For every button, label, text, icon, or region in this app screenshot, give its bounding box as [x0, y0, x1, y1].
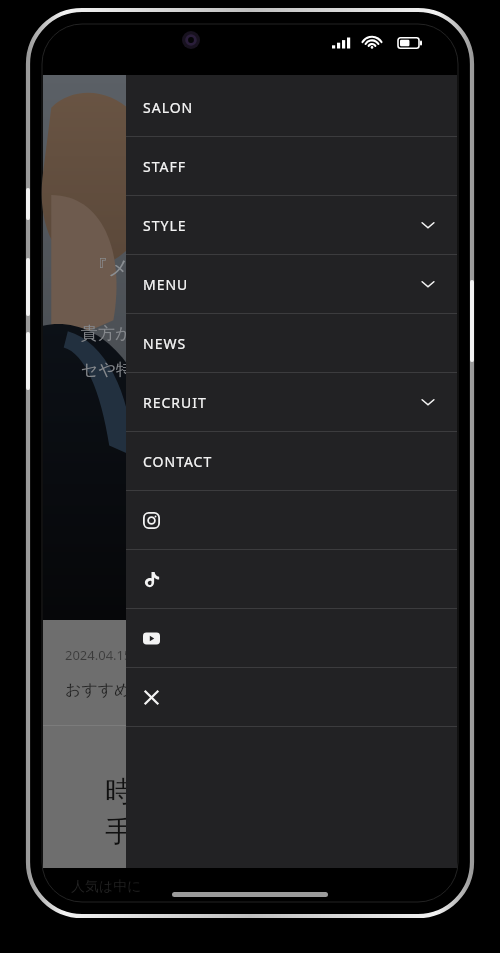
button[interactable]: CONTACT	[126, 432, 457, 490]
staticText: おすすめS	[65, 678, 140, 700]
staticText: STAFF	[143, 157, 186, 176]
staticText: RECRUIT	[143, 393, 207, 412]
staticText: 2024.04.15	[65, 646, 132, 664]
button[interactable]: NEWS	[126, 314, 457, 372]
staticText: 貴方が思い描く	[81, 323, 202, 344]
button[interactable]: x	[126, 668, 457, 726]
button[interactable]: youtube	[126, 609, 457, 667]
staticText: 時	[105, 774, 133, 809]
staticText: CONTACT	[143, 452, 213, 471]
button[interactable]: STYLE	[126, 196, 457, 254]
button[interactable]: SALON	[126, 78, 457, 136]
staticText: MENU	[143, 275, 189, 294]
staticText: STYLE	[143, 216, 187, 235]
staticText: NEWS	[143, 334, 187, 353]
button[interactable]: instagram	[126, 491, 457, 549]
button[interactable]: STAFF	[126, 137, 457, 195]
button[interactable]: tiktok	[126, 550, 457, 608]
staticText: 人気は中に	[71, 878, 142, 896]
staticText: 『メンズヘア』	[87, 255, 237, 281]
staticText: SALON	[143, 98, 194, 117]
button[interactable]: RECRUIT	[126, 373, 457, 431]
staticText: 手	[105, 814, 133, 849]
button[interactable]: MENU	[126, 255, 457, 313]
staticText: セや特徴を	[81, 359, 168, 380]
